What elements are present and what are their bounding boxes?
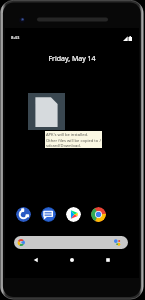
button[interactable]: Search: [14, 236, 128, 249]
staticText: 8:43: [11, 35, 20, 41]
button[interactable]: Phone: [16, 207, 31, 222]
button[interactable]: Play Store: [66, 207, 81, 222]
button[interactable]: Home: [65, 253, 79, 267]
button[interactable]: Messages: [41, 207, 56, 222]
button[interactable]: Chrome: [91, 207, 106, 222]
staticText: APK's will be installed. Other files wil…: [46, 132, 101, 148]
button[interactable]: File: [28, 93, 65, 130]
button[interactable]: Recents: [101, 253, 115, 267]
staticText: Friday, May 14: [5, 54, 139, 64]
button[interactable]: Back: [29, 253, 43, 267]
